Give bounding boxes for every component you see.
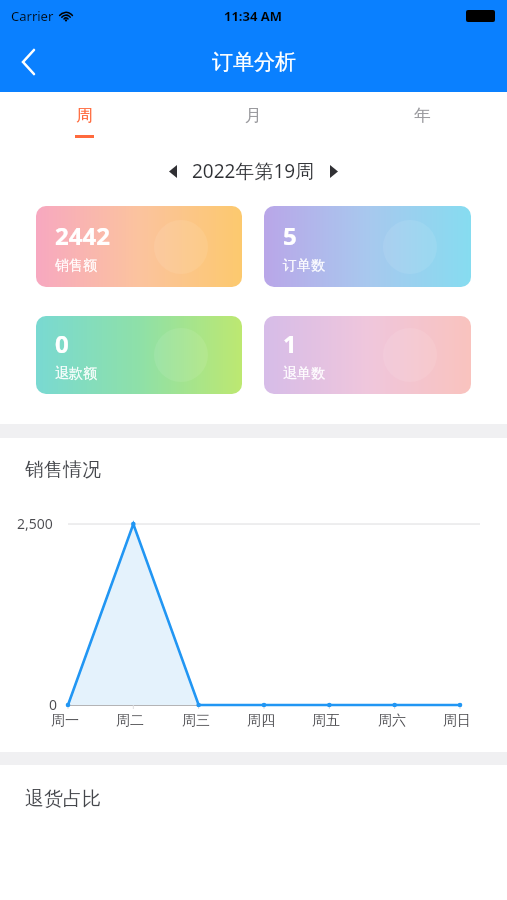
staticText: 1 xyxy=(283,327,297,360)
staticText: 退货占比 xyxy=(25,787,101,811)
staticText: 2022年第19周 xyxy=(192,158,315,184)
staticText: 订单分析 xyxy=(212,49,296,75)
staticText: 周日 xyxy=(443,712,471,730)
staticText: 5 xyxy=(283,219,297,252)
staticText: Carrier xyxy=(11,7,54,25)
staticText: 销售情况 xyxy=(25,458,101,482)
staticText: 月 xyxy=(245,105,262,126)
button[interactable]: 2442 xyxy=(36,206,242,287)
button[interactable]: Previous week xyxy=(160,158,186,184)
button[interactable]: Next week xyxy=(321,158,347,184)
staticText: 0 xyxy=(55,327,69,360)
staticText: 周二 xyxy=(116,712,144,730)
staticText: 周一 xyxy=(51,712,79,730)
staticText: 2442 xyxy=(55,219,110,252)
staticText: 年 xyxy=(414,105,431,126)
staticText: 周六 xyxy=(378,712,406,730)
button[interactable]: 1 xyxy=(264,316,471,394)
staticText: 2,500 xyxy=(17,514,53,533)
staticText: 周五 xyxy=(312,712,340,730)
staticText: 退款额 xyxy=(55,365,97,383)
staticText: 0 xyxy=(49,695,58,714)
button[interactable]: 月 xyxy=(169,105,338,138)
staticText: 周三 xyxy=(182,712,210,730)
staticText: 11:34 AM xyxy=(224,7,283,25)
staticText: 销售额 xyxy=(55,257,97,275)
button[interactable]: 年 xyxy=(338,105,507,138)
staticText: 周四 xyxy=(247,712,275,730)
button[interactable]: 5 xyxy=(264,206,471,287)
button[interactable]: Back xyxy=(0,34,56,90)
button[interactable]: 周 xyxy=(0,105,169,138)
staticText: 订单数 xyxy=(283,257,325,275)
staticText: 退单数 xyxy=(283,365,325,383)
button[interactable]: 0 xyxy=(36,316,242,394)
staticText: 周 xyxy=(76,105,93,126)
